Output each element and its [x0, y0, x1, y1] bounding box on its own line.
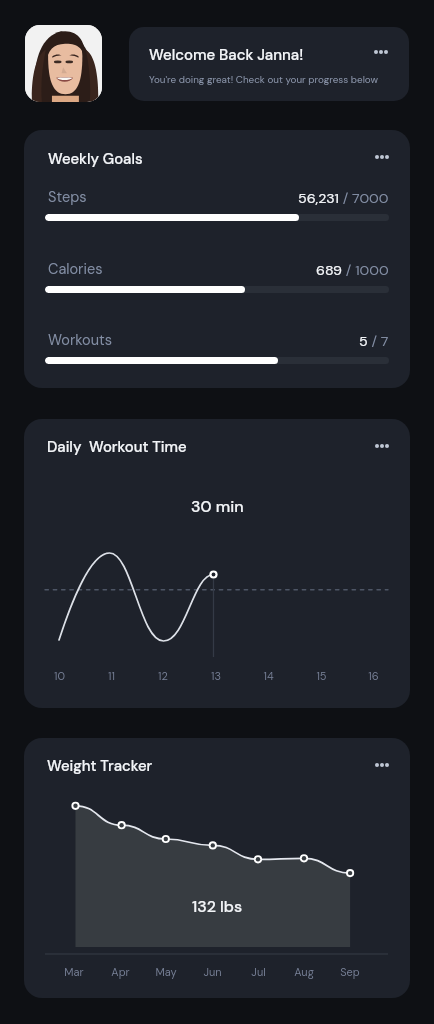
staticText: 13	[211, 669, 221, 683]
button[interactable]: Daily Workout Time	[24, 419, 410, 708]
staticText: Aug	[294, 965, 314, 979]
staticText: Calories	[48, 260, 103, 279]
button[interactable]: More options	[368, 754, 396, 776]
staticText: 5 / 7	[359, 332, 389, 350]
button[interactable]: More options	[368, 146, 396, 168]
staticText: Weight Tracker	[47, 756, 153, 775]
staticText: May	[155, 965, 177, 979]
staticText: Mar	[64, 965, 84, 979]
button[interactable]: Weight Tracker	[24, 738, 410, 998]
staticText: Daily Workout Time	[47, 437, 187, 456]
staticText: 14	[263, 669, 274, 683]
staticText: 56,231 / 7000	[298, 189, 389, 207]
staticText: Jul	[251, 965, 266, 979]
staticText: 12	[158, 669, 168, 683]
button[interactable]: More options	[368, 435, 396, 457]
staticText: Jun	[203, 965, 222, 979]
staticText: Workouts	[48, 331, 112, 350]
button[interactable]: More options	[367, 41, 395, 63]
staticText: Steps	[48, 188, 87, 207]
staticText: Welcome Back Janna!	[149, 45, 304, 65]
button[interactable]: Weekly Goals	[24, 130, 410, 388]
staticText: 15	[316, 669, 327, 683]
staticText: You're doing great! Check out your progr…	[149, 73, 379, 86]
staticText: 16	[368, 669, 379, 683]
staticText: 30 min	[191, 496, 244, 517]
staticText: Sep	[340, 965, 360, 979]
staticText: 689 / 1000	[316, 261, 389, 279]
staticText: 11	[108, 669, 115, 683]
staticText: 132 lbs	[192, 896, 243, 917]
button[interactable]: Profile photo	[25, 25, 102, 102]
staticText: Apr	[111, 965, 130, 979]
button[interactable]: Welcome Back Janna!	[129, 27, 409, 101]
staticText: 10	[54, 669, 65, 683]
staticText: Weekly Goals	[48, 149, 143, 168]
